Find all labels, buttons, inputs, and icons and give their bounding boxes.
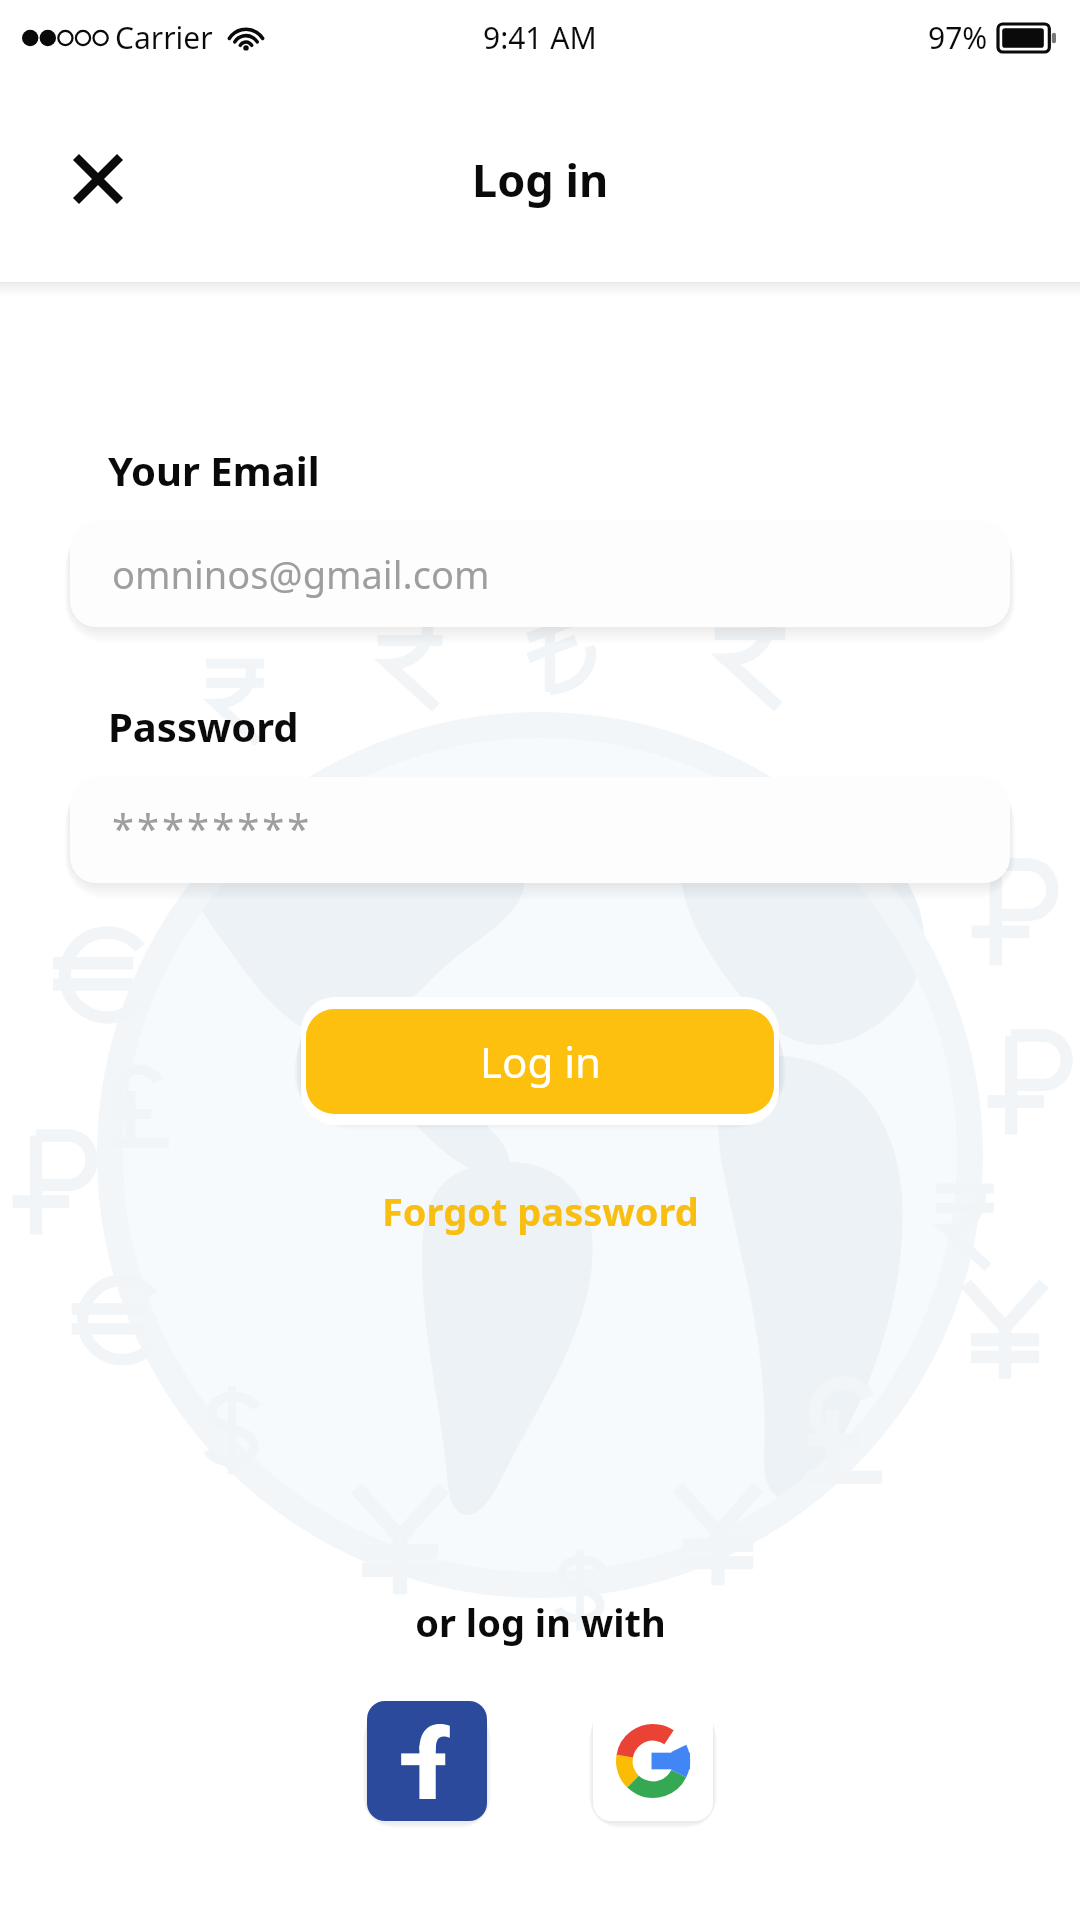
button[interactable]: Log in (306, 1009, 774, 1114)
staticText: Log in (472, 149, 609, 210)
staticText: Password (108, 699, 299, 753)
button[interactable]: Log in with Facebook (367, 1701, 487, 1821)
staticText: omninos@gmail.com (112, 548, 490, 600)
button[interactable]: Log in with Google (593, 1701, 713, 1821)
staticText: Log in (480, 1033, 601, 1090)
button[interactable]: Forgot password (366, 1177, 715, 1245)
staticText: or log in with (415, 1596, 666, 1648)
button[interactable]: omninos@gmail.com (70, 521, 1010, 627)
staticText: 9:41 AM (483, 17, 597, 58)
staticText: Your Email (108, 443, 320, 497)
staticText: 97% (928, 17, 988, 58)
staticText: Carrier (115, 17, 213, 58)
button[interactable]: Close (50, 131, 146, 227)
button[interactable]: ******** (70, 777, 1010, 883)
staticText: Forgot password (382, 1185, 699, 1237)
staticText: ******** (112, 800, 313, 854)
